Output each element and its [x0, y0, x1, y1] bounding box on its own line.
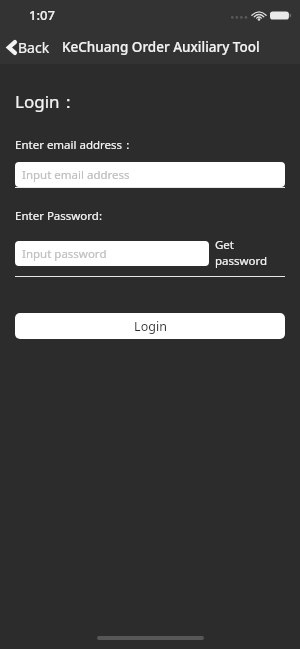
- staticText: Enter Password:: [15, 208, 102, 224]
- button[interactable]: Get password: [209, 233, 285, 273]
- staticText: Enter email address：: [15, 137, 134, 153]
- staticText: Login：: [15, 90, 77, 113]
- staticText: Back: [18, 38, 50, 57]
- staticText: KeChuang Order Auxiliary Tool: [62, 38, 260, 56]
- button[interactable]: Input password: [15, 241, 209, 266]
- button[interactable]: Back: [0, 33, 56, 62]
- staticText: 1:07: [29, 6, 55, 24]
- button[interactable]: Input email address: [15, 162, 285, 187]
- staticText: Input password: [22, 246, 107, 262]
- button[interactable]: Login: [15, 313, 285, 339]
- staticText: Input email address: [22, 167, 130, 183]
- staticText: Login: [134, 318, 167, 335]
- staticText: Get password: [215, 237, 285, 269]
